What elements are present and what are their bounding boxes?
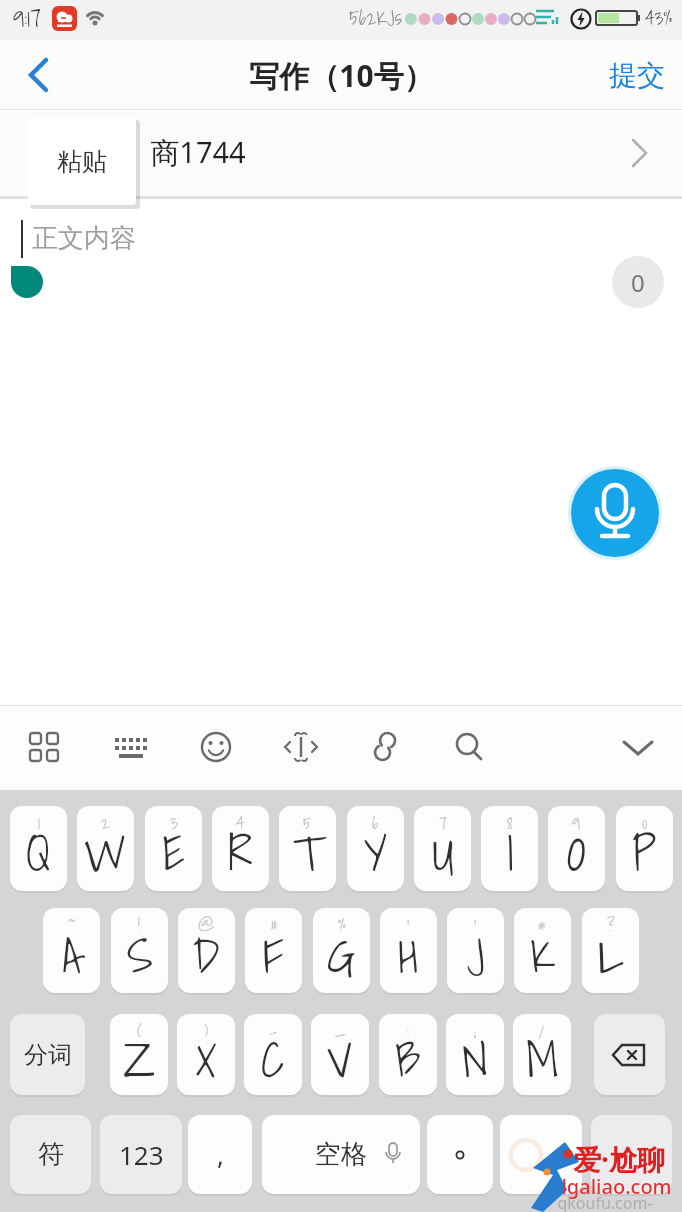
button[interactable] <box>616 726 660 768</box>
button[interactable]: 符 <box>10 1115 91 1194</box>
button[interactable]: G <box>313 908 370 993</box>
button[interactable]: W <box>77 806 134 891</box>
staticText: 0 <box>642 809 648 836</box>
staticText: lgaliao.com <box>561 1173 672 1200</box>
staticText: 562KJs <box>349 2 402 34</box>
staticText: G <box>327 917 356 993</box>
button[interactable]: U <box>414 806 471 891</box>
button[interactable]: D <box>178 908 235 993</box>
button[interactable]: S <box>111 908 168 993</box>
button[interactable] <box>280 726 322 768</box>
button[interactable]: C <box>244 1014 302 1095</box>
staticText: L <box>598 917 624 993</box>
staticText: U <box>432 815 454 891</box>
staticText: ! <box>138 911 141 938</box>
staticText: A <box>62 917 81 993</box>
button[interactable]: V <box>311 1014 369 1095</box>
button[interactable] <box>500 1115 582 1194</box>
staticText: 正文内容 <box>32 222 136 255</box>
staticText: 1 <box>38 809 40 836</box>
staticText: P <box>632 815 657 891</box>
button[interactable]: Z <box>110 1014 168 1095</box>
staticText: I <box>506 815 514 891</box>
staticText: W <box>84 815 127 891</box>
button[interactable] <box>14 52 60 98</box>
staticText: ? <box>607 911 615 938</box>
button[interactable]: 粘贴 <box>28 118 136 205</box>
staticText: % <box>338 911 346 938</box>
button[interactable]: I <box>481 806 538 891</box>
staticText: 分词 <box>24 1040 72 1070</box>
staticText: 空格 <box>315 1138 367 1171</box>
button[interactable]: 提交 <box>592 55 682 95</box>
staticText: @ <box>198 911 215 938</box>
button[interactable]: K <box>514 908 571 993</box>
staticText: ; <box>474 1017 477 1044</box>
button[interactable]: R <box>212 806 269 891</box>
staticText: Q <box>26 815 51 891</box>
staticText: 6 <box>372 809 379 836</box>
button[interactable] <box>365 726 407 768</box>
staticText: 4 <box>236 809 245 836</box>
button[interactable]: X <box>177 1014 235 1095</box>
button[interactable]: , <box>188 1115 252 1194</box>
staticText: qkoufu.com- <box>557 1192 653 1212</box>
staticText: 7 <box>439 809 447 836</box>
button[interactable]: B <box>379 1014 437 1095</box>
staticText: * <box>538 911 547 938</box>
staticText: C <box>261 1021 285 1095</box>
button[interactable]: Y <box>347 806 404 891</box>
button[interactable] <box>195 726 237 768</box>
staticText: ) <box>204 1017 209 1044</box>
button[interactable]: L <box>582 908 639 993</box>
staticText: 提交 <box>609 58 665 93</box>
button[interactable] <box>0 110 682 199</box>
staticText: 8 <box>507 809 513 836</box>
button[interactable] <box>24 726 66 768</box>
button[interactable] <box>591 1115 672 1194</box>
button[interactable]: H <box>380 908 437 993</box>
button[interactable]: J <box>447 908 504 993</box>
button[interactable]: E <box>145 806 202 891</box>
button[interactable]: F <box>245 908 302 993</box>
staticText: 符 <box>38 1138 64 1171</box>
button[interactable]: T <box>279 806 336 891</box>
button[interactable]: P <box>616 806 673 891</box>
staticText: 9 <box>572 809 581 836</box>
staticText: ( <box>137 1017 142 1044</box>
staticText: V <box>327 1021 353 1095</box>
staticText: S <box>127 917 153 993</box>
staticText: _ <box>335 1017 346 1044</box>
staticText: : <box>407 1017 410 1044</box>
staticText: 123 <box>119 1137 164 1172</box>
staticText: , <box>217 1137 224 1172</box>
button[interactable]: A <box>43 908 100 993</box>
button[interactable] <box>594 1014 665 1095</box>
button[interactable] <box>110 726 152 768</box>
button[interactable]: 空格 <box>262 1115 420 1194</box>
staticText: 9:17 <box>13 0 41 38</box>
staticText: 5 <box>303 809 312 836</box>
staticText: F <box>263 917 284 993</box>
staticText: B <box>395 1021 421 1095</box>
button[interactable]: 分词 <box>10 1014 85 1095</box>
staticText: 3 <box>170 809 178 836</box>
staticText: ' <box>407 911 410 938</box>
button[interactable]: Q <box>10 806 67 891</box>
staticText: ~ <box>68 911 76 938</box>
staticText: D <box>193 917 220 993</box>
staticText: 粘贴 <box>57 146 107 177</box>
staticText: 爱·尬聊 <box>573 1140 665 1178</box>
staticText: 2 <box>101 809 110 836</box>
button[interactable]: O <box>548 806 605 891</box>
button[interactable]: N <box>446 1014 504 1095</box>
button[interactable]: 123 <box>100 1115 182 1194</box>
staticText: # <box>270 911 278 938</box>
staticText: / <box>539 1017 545 1044</box>
staticText: M <box>526 1021 559 1095</box>
staticText: Y <box>364 815 388 891</box>
button[interactable]: M <box>513 1014 571 1095</box>
button[interactable] <box>427 1115 493 1194</box>
button[interactable] <box>448 726 490 768</box>
button[interactable] <box>571 469 659 557</box>
